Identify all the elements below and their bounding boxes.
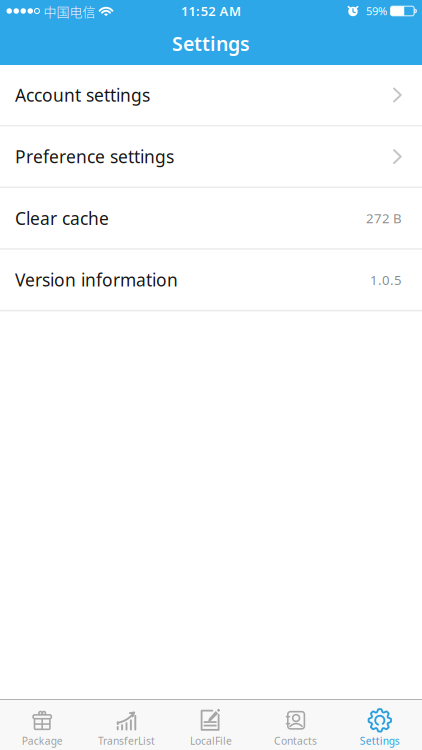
- button[interactable]: Contacts: [253, 700, 338, 750]
- button[interactable]: TransferList: [84, 700, 169, 750]
- staticText: 11:52 AM: [181, 2, 241, 20]
- button[interactable]: Account settings: [0, 65, 422, 125]
- staticText: 59%: [366, 3, 387, 19]
- staticText: Package: [22, 734, 63, 748]
- button[interactable]: Version information: [0, 250, 422, 310]
- button[interactable]: Clear cache: [0, 188, 422, 248]
- staticText: 1.0.5: [370, 271, 402, 289]
- staticText: Settings: [172, 30, 250, 57]
- button[interactable]: Settings: [338, 700, 422, 750]
- staticText: Contacts: [274, 734, 317, 748]
- staticText: 中国电信: [43, 2, 95, 20]
- staticText: Clear cache: [15, 206, 109, 230]
- staticText: Preference settings: [15, 145, 174, 168]
- button[interactable]: Package: [0, 700, 84, 750]
- staticText: Version information: [15, 268, 178, 292]
- button[interactable]: LocalFile: [169, 700, 253, 750]
- staticText: TransferList: [98, 734, 155, 748]
- staticText: Account settings: [15, 83, 150, 107]
- staticText: LocalFile: [190, 734, 232, 748]
- staticText: 272 B: [366, 209, 402, 227]
- button[interactable]: Preference settings: [0, 127, 422, 187]
- staticText: Settings: [360, 734, 400, 748]
